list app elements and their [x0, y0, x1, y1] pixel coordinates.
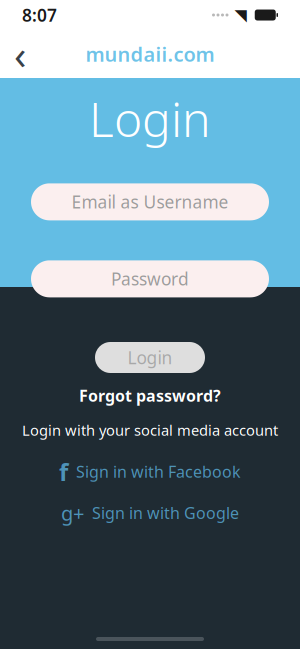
staticText: Forgot password? [79, 385, 221, 406]
staticText: 8:07 [22, 3, 57, 26]
button[interactable]: Back [0, 32, 40, 76]
button[interactable]: Email as Username [31, 183, 269, 220]
staticText: ◥ [234, 6, 246, 24]
button[interactable]: Login [95, 342, 205, 373]
staticText: Login [127, 346, 172, 369]
staticText: Sign in with Google [92, 502, 239, 523]
staticText: Sign in with Facebook [76, 461, 241, 482]
staticText: Email as Username [71, 190, 228, 213]
staticText: Login with your social media account [22, 420, 278, 440]
staticText: ‹ [14, 27, 26, 80]
staticText: g+ [61, 500, 84, 526]
button[interactable]: Password [31, 260, 269, 297]
staticText: Login [89, 87, 211, 150]
button[interactable]: f [59, 456, 241, 488]
staticText: f [59, 456, 68, 488]
button[interactable]: Forgot password? [79, 385, 221, 406]
button[interactable]: g+ [61, 500, 239, 526]
staticText: mundaii.com [85, 41, 214, 67]
staticText: Password [111, 267, 189, 290]
